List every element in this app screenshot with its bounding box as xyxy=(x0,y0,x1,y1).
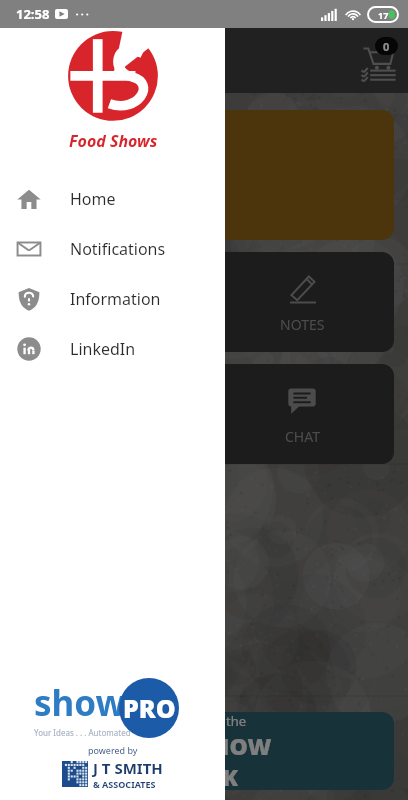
staticText: 2020 xyxy=(15,157,145,193)
staticText: J T SMITH xyxy=(93,758,163,778)
button[interactable]: Check out the xyxy=(14,712,394,790)
staticText: Food Shows xyxy=(69,130,158,152)
button[interactable]: CHAT xyxy=(210,364,394,464)
staticText: Notifications xyxy=(70,238,166,260)
staticText: 0 xyxy=(383,39,390,54)
staticText: CHAT xyxy=(285,427,320,446)
staticText: powered by xyxy=(88,744,138,756)
button[interactable]: Cart xyxy=(350,37,398,85)
button[interactable]: Home xyxy=(0,174,225,224)
button[interactable]: 2020 xyxy=(14,110,394,240)
staticText: FULL SHOW xyxy=(136,730,272,761)
staticText: Hearn Shows xyxy=(74,48,192,74)
staticText: FALL xyxy=(98,111,164,148)
button[interactable]: Notifications xyxy=(0,224,225,274)
staticText: Information xyxy=(70,288,161,310)
staticText: Check out the xyxy=(162,712,247,730)
staticText: PRO xyxy=(123,691,176,725)
button[interactable]: ORDERS xyxy=(14,252,198,352)
staticText: LinkedIn xyxy=(70,338,136,360)
button[interactable]: NOTES xyxy=(210,252,394,352)
staticText: Home xyxy=(70,188,116,210)
staticText: SHOW xyxy=(98,185,184,222)
staticText: BOOK xyxy=(170,761,238,790)
staticText: 17 xyxy=(378,9,389,21)
staticText: show xyxy=(34,679,126,727)
staticText: NOTES xyxy=(280,315,325,334)
button[interactable]: Information xyxy=(0,274,225,324)
staticText: & ASSOCIATES xyxy=(93,778,156,790)
staticText: Your Ideas . . . Automated xyxy=(34,727,131,738)
button[interactable]: LinkedIn xyxy=(0,324,225,374)
staticText: 12:58 xyxy=(16,5,50,23)
